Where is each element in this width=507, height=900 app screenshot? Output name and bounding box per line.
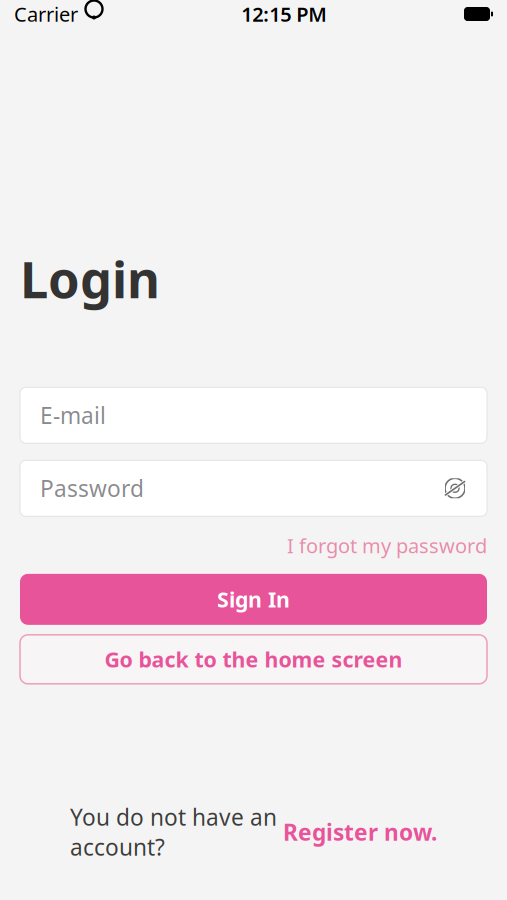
staticText: Sign In <box>217 585 290 613</box>
staticText: Go back to the home screen <box>104 645 402 673</box>
button[interactable]: Password <box>20 460 487 516</box>
button[interactable]: E-mail <box>20 387 487 443</box>
button[interactable]: I forgot my password <box>287 528 487 563</box>
staticText: 12:15 PM <box>241 1 327 27</box>
staticText: Password <box>40 473 144 503</box>
staticText: I forgot my password <box>287 532 487 559</box>
staticText: Register now. <box>283 817 437 847</box>
button[interactable]: You do not have an account? <box>20 796 487 868</box>
button[interactable]: Go back to the home screen <box>20 635 487 684</box>
staticText: Carrier <box>14 1 78 27</box>
staticText: Login <box>20 245 160 312</box>
staticText: E-mail <box>40 400 106 430</box>
staticText: You do not have an account? <box>70 802 277 862</box>
button[interactable]: Sign In <box>20 574 487 625</box>
